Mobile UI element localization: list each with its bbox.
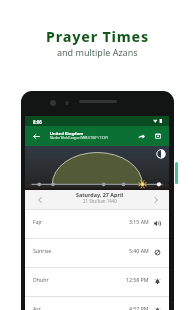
staticText: Fajr <box>33 218 43 225</box>
staticText: 4:57 PM <box>129 305 149 310</box>
staticText: 8:06 <box>33 119 42 125</box>
button[interactable]: Next day <box>145 190 167 209</box>
staticText: Saturday, 27 April <box>76 191 124 198</box>
staticText: Prayer Times <box>46 27 149 46</box>
staticText: 5:40 AM <box>129 247 149 254</box>
staticText: and multiple Azans <box>57 46 138 58</box>
staticText: Dhuhr <box>33 276 49 283</box>
button[interactable]: Calendar <box>150 126 166 146</box>
button[interactable]: Sunrise <box>25 239 169 267</box>
staticText: 3:15 AM <box>129 218 149 225</box>
button[interactable]: Back <box>28 126 45 146</box>
button[interactable]: Asr <box>25 297 169 310</box>
staticText: Asr <box>33 305 41 310</box>
staticText: United Kingdom <box>50 131 84 137</box>
staticText: 21 Sha'ban 1440 <box>83 198 117 204</box>
staticText: Muslim World League (MWL) (18.0° / 17.0°… <box>50 136 108 140</box>
button[interactable]: Previous day <box>29 190 51 209</box>
button[interactable]: Dhuhr <box>25 268 169 296</box>
button[interactable]: Fajr <box>25 210 169 238</box>
button[interactable]: Share <box>133 126 149 146</box>
button[interactable]: Toggle dark mode <box>155 148 167 160</box>
staticText: 12:58 PM <box>126 276 149 283</box>
staticText: Sunrise <box>33 247 52 254</box>
